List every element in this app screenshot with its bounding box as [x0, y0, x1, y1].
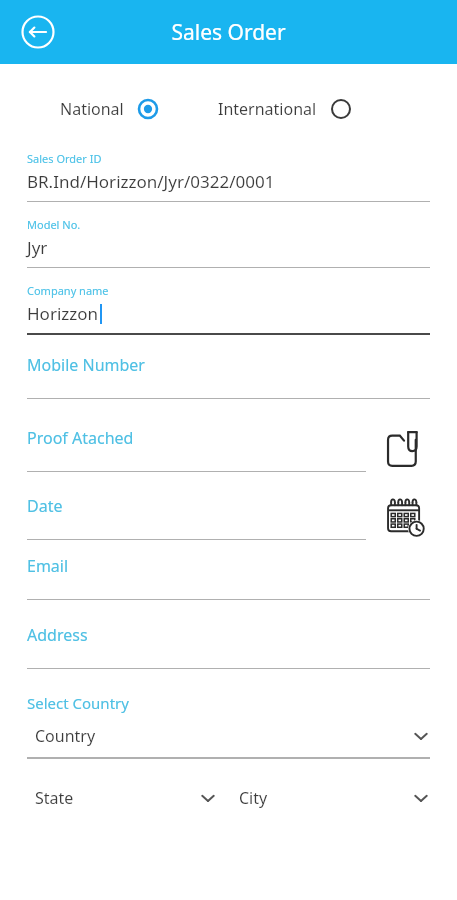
button[interactable]: Company name: [0, 283, 457, 335]
button[interactable]: State: [27, 787, 217, 809]
staticText: International: [218, 98, 317, 120]
button[interactable]: Sales Order ID: [0, 151, 457, 202]
staticText: Proof Atached: [27, 427, 134, 449]
staticText: Address: [27, 624, 88, 646]
button[interactable]: Email: [0, 555, 457, 600]
staticText: BR.Ind/Horizzon/Jyr/0322/0001: [27, 170, 275, 193]
staticText: Company name: [27, 283, 109, 298]
staticText: Select Country: [27, 693, 129, 713]
staticText: Model No.: [27, 217, 81, 232]
button[interactable]: Model No.: [0, 217, 457, 268]
button[interactable]: Date: [27, 495, 366, 540]
staticText: National: [60, 98, 124, 120]
staticText: Horizzon: [27, 302, 99, 325]
staticText: Date: [27, 495, 63, 517]
staticText: Mobile Number: [27, 354, 145, 376]
staticText: Sales Order: [171, 18, 286, 47]
button[interactable]: International: [218, 94, 351, 124]
staticText: State: [35, 787, 74, 809]
staticText: Jyr: [27, 236, 48, 259]
button[interactable]: City: [239, 787, 430, 809]
staticText: Sales Order ID: [27, 151, 102, 166]
button[interactable]: National: [60, 94, 158, 124]
staticText: City: [239, 787, 268, 809]
button[interactable]: Attach proof: [378, 423, 430, 475]
staticText: Country: [35, 725, 96, 747]
staticText: Email: [27, 555, 69, 577]
button[interactable]: Address: [0, 624, 457, 669]
button[interactable]: Proof Atached: [27, 427, 366, 472]
button[interactable]: Select Country: [0, 693, 457, 759]
button[interactable]: Pick date: [378, 491, 430, 543]
button[interactable]: Back: [14, 8, 62, 56]
button[interactable]: Mobile Number: [0, 354, 457, 399]
